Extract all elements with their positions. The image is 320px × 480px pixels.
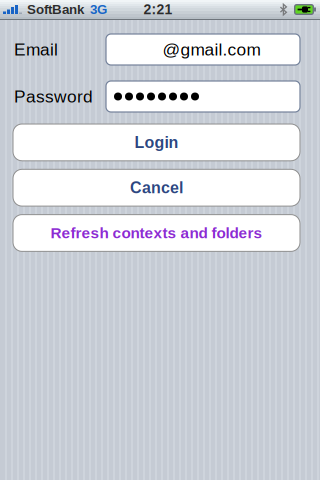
button[interactable]: Refresh contexts and folders: [13, 215, 300, 251]
staticText: 2:21: [143, 2, 172, 17]
button[interactable]: Cancel: [13, 169, 300, 206]
staticText: Cancel: [130, 179, 183, 197]
staticText: Password: [14, 87, 93, 106]
staticText: Email: [14, 40, 58, 59]
staticText: Refresh contexts and folders: [50, 224, 262, 241]
staticText: SoftBank: [27, 2, 84, 17]
staticText: @gmail.com: [162, 40, 260, 59]
staticText: Login: [134, 133, 178, 151]
button[interactable]: Login: [13, 124, 300, 161]
staticText: 3G: [90, 2, 107, 17]
